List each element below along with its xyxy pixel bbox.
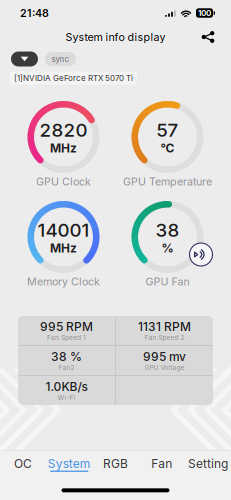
staticText: System info display [65,31,165,43]
staticText: 57 [156,119,178,141]
staticText: 995 RPM [40,319,93,334]
staticText: 1.0KB/s [45,379,87,394]
staticText: Fan Speed 1 [47,334,86,341]
button[interactable]: sync [45,52,76,66]
button[interactable]: RGB [92,451,139,481]
button[interactable]: Broadcast [188,242,213,267]
staticText: 38 [155,219,179,241]
staticText: GPU Temperature [123,175,212,188]
staticText: MHz [50,241,77,255]
button[interactable]: Select device [11,51,38,66]
button[interactable]: System [46,451,92,481]
staticText: °C [160,141,174,155]
staticText: MHz [50,141,77,155]
staticText: sync [51,54,69,64]
staticText: OC [14,456,32,471]
staticText: GPU Clock [36,175,91,188]
staticText: 38 % [51,349,82,364]
staticText: [1]NVIDIA GeForce RTX 5070 Ti [14,73,133,83]
staticText: Fan [151,456,172,471]
staticText: 2820 [39,119,87,141]
staticText: Memory Clock [27,275,100,288]
staticText: System [48,456,91,471]
button[interactable]: Share [195,26,221,48]
staticText: Fan Speed 2 [144,334,184,341]
staticText: Setting [188,456,228,471]
button[interactable]: OC [0,451,46,481]
staticText: 14001 [37,219,89,241]
staticText: 21:48 [20,7,49,19]
staticText: RGB [103,456,128,471]
button[interactable]: Setting [185,451,231,481]
staticText: GPU Voltage [144,364,184,371]
staticText: GPU Fan [145,275,189,288]
staticText: Fan2 [58,364,74,371]
staticText: 1131 RPM [138,319,191,334]
button[interactable]: Fan [139,451,185,481]
staticText: 995 mv [143,349,186,364]
staticText: 100 [198,8,211,18]
staticText: % [161,241,173,255]
staticText: Wi-Fi [57,394,75,401]
